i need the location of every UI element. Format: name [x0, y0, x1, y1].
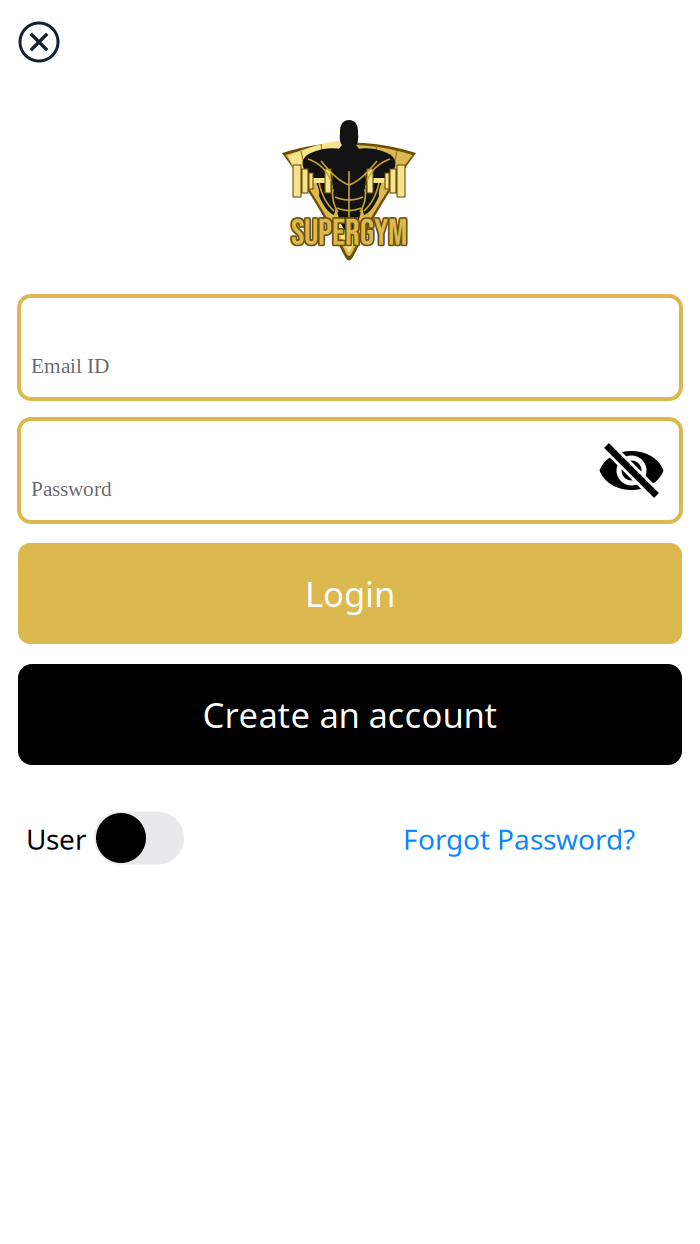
- button[interactable]: Close: [17, 20, 61, 64]
- button[interactable]: Login: [18, 543, 682, 644]
- staticText: Email ID: [31, 354, 109, 377]
- staticText: Forgot Password?: [403, 820, 635, 858]
- staticText: User: [26, 820, 87, 858]
- staticText: SUPERGYM: [290, 214, 406, 257]
- staticText: SUPERGYM: [292, 212, 408, 256]
- staticText: Password: [31, 477, 112, 500]
- staticText: Login: [305, 570, 395, 616]
- button[interactable]: Create an account: [18, 664, 682, 765]
- staticText: Create an account: [202, 691, 497, 737]
- button[interactable]: Forgot Password?: [403, 820, 635, 858]
- staticText: SUPERGYM: [291, 212, 407, 256]
- staticText: SUPERGYM: [290, 211, 406, 254]
- button[interactable]: Email ID: [19, 296, 681, 399]
- staticText: SUPERGYM: [289, 212, 405, 256]
- staticText: SUPERGYM: [291, 211, 407, 254]
- button[interactable]: User mode toggle: [94, 811, 184, 864]
- button[interactable]: Show password: [598, 441, 664, 499]
- staticText: SUPERGYM: [292, 211, 408, 254]
- staticText: SUPERGYM: [292, 214, 408, 257]
- staticText: SUPERGYM: [291, 214, 407, 257]
- button[interactable]: Password: [19, 419, 681, 522]
